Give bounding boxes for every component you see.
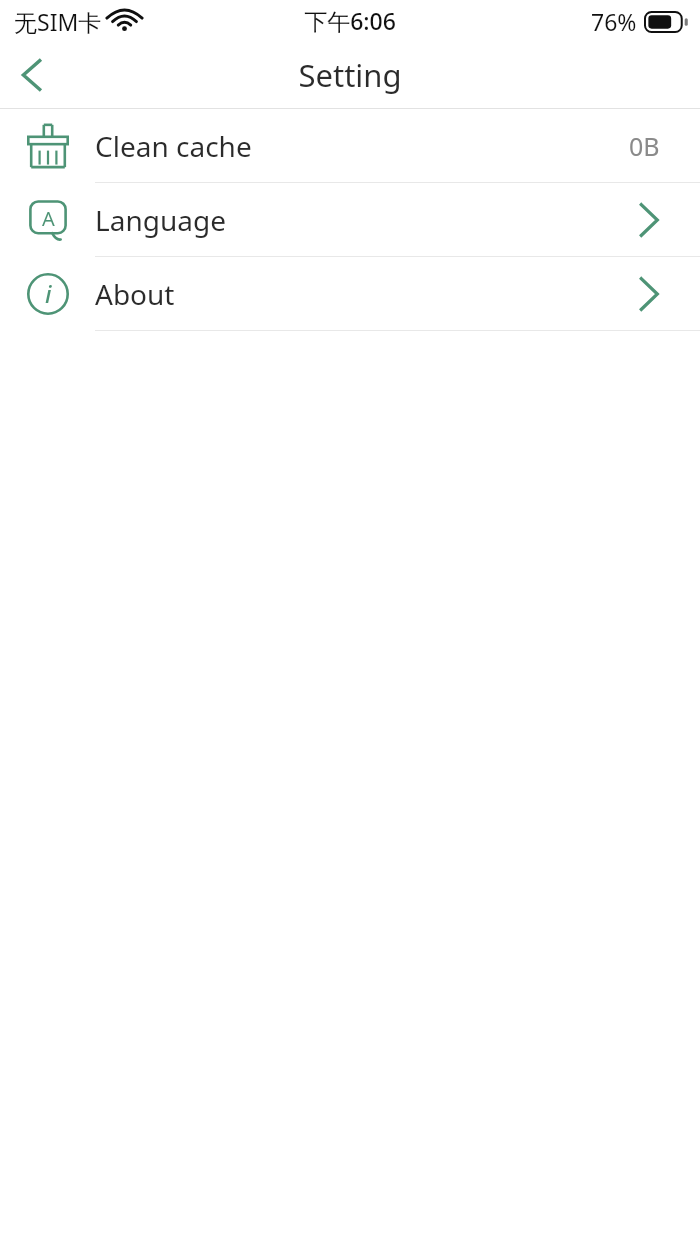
button[interactable]: Back [0, 43, 64, 107]
staticText: Clean cache [95, 127, 252, 165]
staticText: 76% [591, 6, 637, 37]
staticText: Setting [298, 54, 402, 96]
button[interactable]: A [0, 183, 700, 257]
button[interactable]: Clean cache [0, 109, 700, 183]
staticText: 0B [629, 129, 660, 163]
staticText: i [45, 277, 52, 310]
staticText: 下午6:06 [304, 5, 396, 36]
staticText: A [42, 205, 55, 232]
button[interactable]: i [0, 257, 700, 331]
staticText: Language [95, 201, 226, 239]
staticText: About [95, 275, 175, 313]
staticText: 无SIM卡 [14, 6, 102, 37]
